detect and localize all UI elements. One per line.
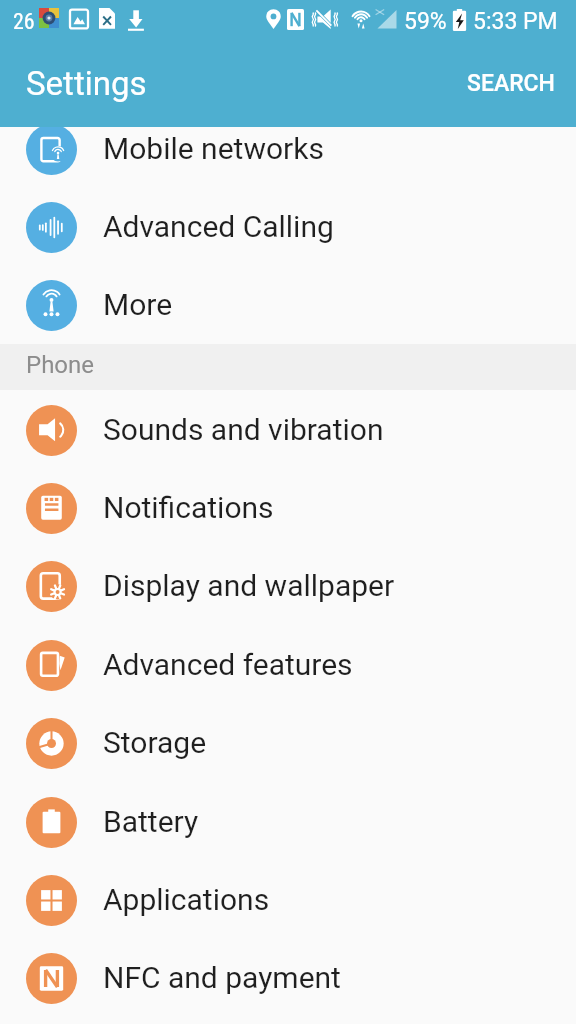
button[interactable]: NFC and payment — [0, 939, 576, 1017]
button[interactable]: Storage — [0, 704, 576, 782]
staticText: 26 — [13, 9, 35, 35]
button[interactable]: Sounds and vibration — [0, 391, 576, 469]
staticText: Display and wallpaper — [103, 568, 395, 603]
staticText: Mobile networks — [103, 131, 324, 166]
staticText: SEARCH — [467, 70, 555, 97]
staticText: Advanced Calling — [103, 209, 334, 244]
button[interactable]: Advanced Calling — [0, 188, 576, 266]
staticText: Phone — [26, 351, 95, 379]
button[interactable]: Display and wallpaper — [0, 547, 576, 625]
staticText: Battery — [103, 804, 199, 839]
staticText: Applications — [103, 882, 270, 917]
staticText: Notifications — [103, 490, 274, 525]
button[interactable]: SEARCH — [437, 50, 576, 117]
staticText: 59% — [404, 8, 447, 35]
button[interactable]: Applications — [0, 861, 576, 939]
staticText: Advanced features — [103, 647, 353, 682]
staticText: Sounds and vibration — [103, 412, 384, 447]
button[interactable]: Battery — [0, 783, 576, 861]
staticText: NFC and payment — [103, 960, 341, 995]
button[interactable]: Notifications — [0, 469, 576, 547]
button[interactable]: Mobile networks — [0, 110, 576, 188]
staticText: Storage — [103, 725, 207, 760]
staticText: Settings — [26, 64, 147, 103]
button[interactable]: Advanced features — [0, 626, 576, 704]
button[interactable]: More — [0, 266, 576, 344]
staticText: 5:33 PM — [473, 8, 558, 35]
staticText: More — [103, 287, 173, 322]
